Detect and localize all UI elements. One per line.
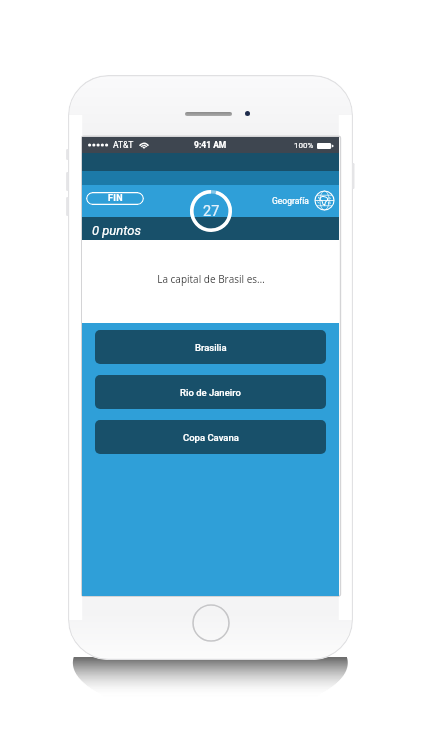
staticText: 0 puntos (92, 223, 141, 238)
button[interactable]: Rio de Janeiro (95, 375, 326, 409)
button[interactable]: FIN (86, 192, 144, 205)
staticText: Brasilia (195, 342, 227, 353)
button[interactable]: Copa Cavana (95, 420, 326, 454)
staticText: Copa Cavana (183, 432, 239, 443)
staticText: FIN (108, 193, 123, 204)
other: Categoría Geografía (314, 190, 335, 211)
staticText: 100% (294, 141, 314, 150)
staticText: 27 (203, 203, 220, 220)
staticText: La capital de Brasil es… (157, 272, 265, 286)
staticText: 9:41 AM (194, 140, 227, 150)
staticText: Rio de Janeiro (180, 387, 241, 398)
staticText: Geografía (272, 196, 309, 206)
staticText: AT&T (113, 140, 134, 150)
button[interactable]: Brasilia (95, 330, 326, 364)
